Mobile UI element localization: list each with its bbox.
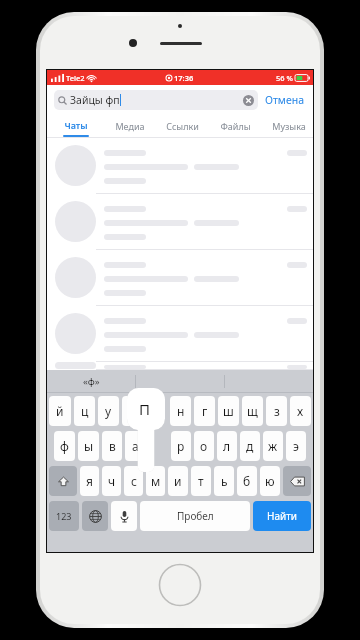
button[interactable]: н [170, 396, 191, 426]
button[interactable]: Change keyboard [82, 501, 108, 531]
staticText: Медиа [115, 120, 145, 132]
staticText: р [177, 438, 185, 454]
staticText: х [297, 403, 304, 419]
button[interactable]: ь [214, 466, 234, 496]
staticText: «ф» [83, 375, 100, 388]
staticText: л [223, 438, 231, 454]
button[interactable]: х [290, 396, 311, 426]
staticText: Чаты [64, 119, 88, 131]
button[interactable]: б [237, 466, 257, 496]
button[interactable]: Shift [49, 466, 77, 496]
staticText: с [131, 473, 137, 489]
staticText: Музыка [272, 120, 306, 132]
staticText: з [274, 403, 280, 419]
button[interactable]: «ф» [47, 370, 135, 393]
staticText: н [177, 403, 185, 419]
staticText: м [151, 473, 161, 489]
button[interactable]: л [217, 431, 237, 461]
staticText: 123 [56, 510, 72, 522]
staticText: д [246, 438, 254, 454]
staticText: Отмена [265, 93, 305, 107]
button[interactable]: г [194, 396, 215, 426]
staticText: ж [268, 438, 278, 454]
button[interactable]: у [98, 396, 119, 426]
button[interactable]: а [125, 431, 145, 461]
button[interactable]: Dictation [111, 501, 137, 531]
staticText: и [174, 473, 182, 489]
button[interactable]: ц [74, 396, 95, 426]
staticText: ш [223, 403, 234, 419]
button[interactable]: й [49, 396, 71, 426]
button[interactable] [224, 370, 313, 393]
staticText: Найти [267, 509, 298, 523]
button[interactable]: з [266, 396, 287, 426]
staticText: а [132, 438, 139, 454]
button[interactable]: в [102, 431, 122, 461]
button[interactable]: Чаты [49, 115, 103, 138]
button[interactable]: я [80, 466, 99, 496]
button[interactable]: ы [78, 431, 99, 461]
button[interactable]: Пробел [140, 501, 250, 531]
staticText: ы [84, 438, 94, 454]
button[interactable]: с [124, 466, 143, 496]
button[interactable]: Ссылки [156, 115, 209, 138]
staticText: Tele2 [66, 73, 85, 83]
button[interactable]: Отмена [264, 90, 306, 110]
button[interactable]: к [122, 396, 143, 426]
staticText: Зайцы фп [70, 93, 120, 107]
staticText: ф [60, 438, 69, 454]
button[interactable]: и [168, 466, 188, 496]
staticText: у [105, 403, 112, 419]
staticText: э [293, 438, 299, 454]
button[interactable]: ф [54, 431, 75, 461]
button[interactable]: ч [102, 466, 121, 496]
button[interactable]: ю [260, 466, 280, 496]
staticText: щ [247, 403, 258, 419]
button[interactable]: д [240, 431, 260, 461]
button[interactable]: э [286, 431, 306, 461]
staticText: я [86, 473, 93, 489]
button[interactable]: Backspace [283, 466, 311, 496]
button[interactable]: 123 [49, 501, 79, 531]
staticText: Пробел [177, 509, 214, 523]
staticText: П [139, 399, 150, 419]
staticText: ц [81, 403, 89, 419]
staticText: ч [108, 473, 116, 489]
button[interactable]: т [191, 466, 211, 496]
staticText: 56 % [276, 73, 293, 83]
button[interactable]: Медиа [103, 115, 156, 138]
button[interactable]: ж [263, 431, 283, 461]
staticText: ю [265, 473, 275, 489]
staticText: 17:36 [174, 73, 194, 83]
staticText: ь [221, 473, 228, 489]
staticText: б [243, 473, 251, 489]
button[interactable]: щ [242, 396, 263, 426]
button[interactable]: Зайцы фп [54, 90, 258, 110]
staticText: Ссылки [166, 120, 199, 132]
button[interactable]: Файлы [209, 115, 262, 138]
staticText: в [109, 438, 116, 454]
button[interactable]: о [194, 431, 214, 461]
staticText: Файлы [220, 120, 251, 132]
staticText: о [200, 438, 208, 454]
button[interactable]: Clear search [243, 95, 254, 106]
button[interactable]: р [171, 431, 191, 461]
staticText: й [56, 403, 64, 419]
button[interactable]: м [146, 466, 165, 496]
staticText: г [202, 403, 208, 419]
button[interactable]: Музыка [262, 115, 315, 138]
button[interactable]: ш [218, 396, 239, 426]
button[interactable] [135, 370, 224, 393]
button[interactable]: Найти [253, 501, 311, 531]
staticText: т [198, 473, 204, 489]
